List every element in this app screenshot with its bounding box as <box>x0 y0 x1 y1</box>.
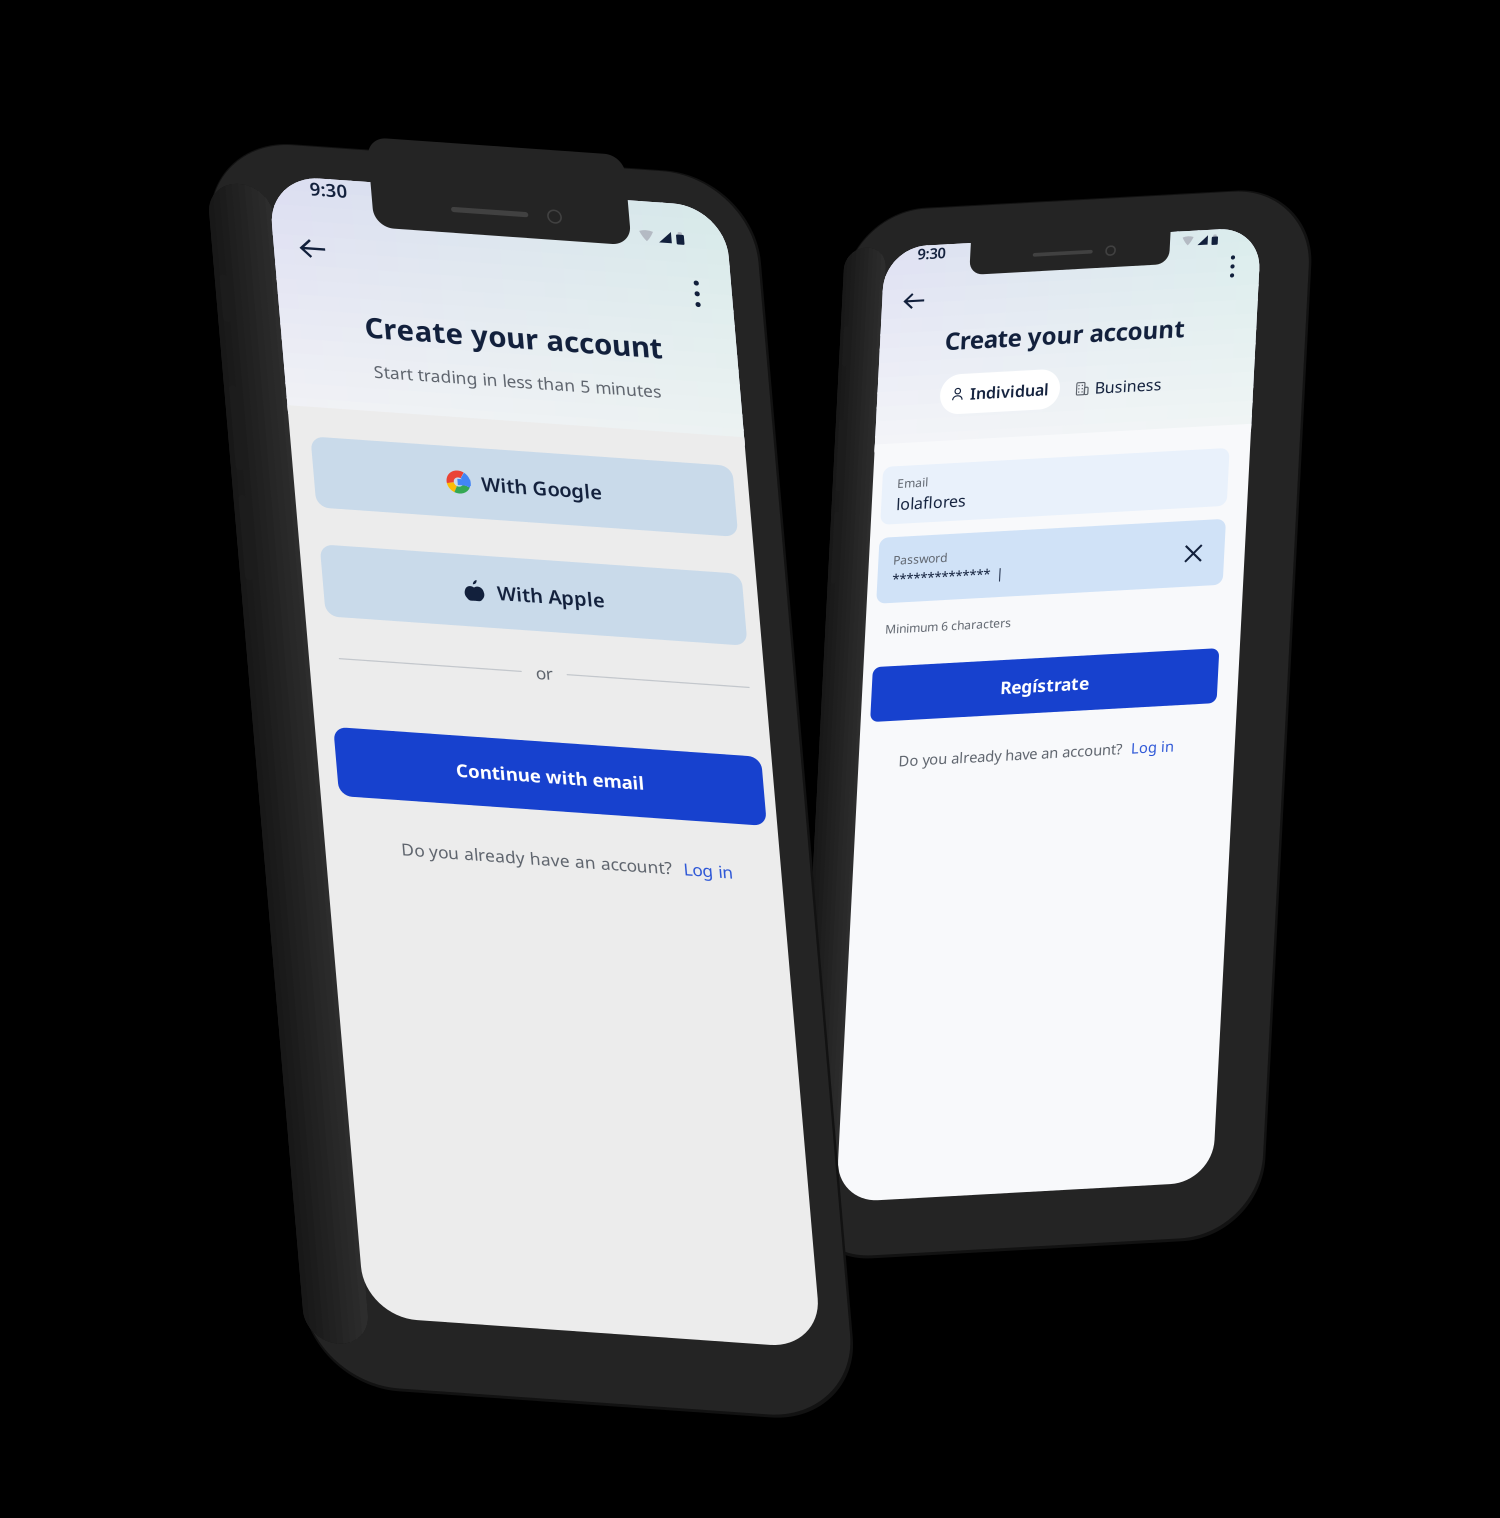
staticText: Create your account <box>146 166 445 205</box>
button[interactable]: Regístrate <box>49 458 396 513</box>
staticText: Start trading in less than 5 minutes <box>152 220 440 243</box>
button[interactable]: Continue with email <box>80 608 509 680</box>
staticText: Log in <box>313 544 356 564</box>
staticText: With Apple <box>257 442 365 468</box>
button[interactable]: With Google <box>82 305 505 379</box>
button[interactable]: Log in <box>421 719 471 742</box>
staticText: With Google <box>251 329 372 355</box>
staticText: Regístrate <box>178 474 267 497</box>
staticText: Create your account <box>105 119 345 151</box>
button[interactable]: More options <box>468 104 502 150</box>
button[interactable]: With Apple <box>82 417 505 492</box>
button[interactable]: Individual <box>103 169 223 209</box>
staticText: Business <box>258 179 325 201</box>
staticText: Continue with email <box>200 632 389 656</box>
staticText: or <box>289 524 306 547</box>
button[interactable]: Business <box>235 170 329 210</box>
staticText: Do you already have an account? <box>138 719 410 742</box>
staticText: Do you already have an account? <box>80 544 304 564</box>
button[interactable]: Log in <box>313 544 356 564</box>
button[interactable]: Clear password <box>352 349 378 375</box>
staticText: Log in <box>421 719 471 742</box>
